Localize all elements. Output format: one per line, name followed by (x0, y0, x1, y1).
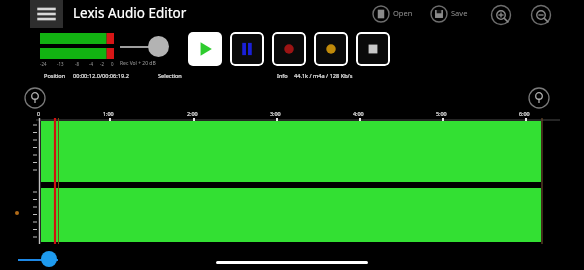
staticText: 00:00:12.0/00:06:19.2 (73, 72, 129, 80)
staticText: 3:00 (270, 110, 281, 117)
button[interactable]: Record (272, 32, 306, 66)
button[interactable]: Menu (30, 0, 63, 28)
button[interactable]: Save (430, 2, 484, 26)
staticText: -4 (89, 61, 93, 67)
button[interactable]: Horizontal scroll (216, 261, 368, 264)
staticText: Open (393, 8, 413, 18)
staticText: Info (277, 72, 288, 80)
button[interactable]: Record pause (314, 32, 348, 66)
button[interactable]: Zoom level (41, 251, 57, 267)
button[interactable]: Add marker right (528, 87, 550, 109)
staticText: 44.1k / m4a / 128 Kb/s (294, 72, 353, 80)
button[interactable]: Pause (230, 32, 264, 66)
staticText: Selection (158, 72, 182, 80)
button[interactable]: Zoom out (530, 4, 552, 26)
staticText: 6:00 (519, 110, 530, 117)
button[interactable]: Add marker left (24, 87, 46, 109)
staticText: -24 (40, 61, 47, 67)
button[interactable]: Recording volume (148, 36, 169, 57)
staticText: 4:00 (353, 110, 364, 117)
staticText: Position (44, 72, 66, 80)
staticText: Save (451, 8, 468, 18)
button[interactable]: Play (188, 32, 222, 66)
button[interactable]: Open (372, 2, 426, 26)
staticText: Rec Vol + 20 dB (120, 60, 156, 67)
staticText: -8 (75, 61, 79, 67)
button[interactable]: Stop (356, 32, 390, 66)
staticText: 1:00 (103, 110, 114, 117)
staticText: 0 (37, 110, 41, 117)
staticText: 5:00 (436, 110, 447, 117)
staticText: 0 (111, 61, 114, 67)
staticText: -2 (100, 61, 104, 67)
staticText: -13 (57, 61, 64, 67)
staticText: Lexis Audio Editor (73, 4, 187, 22)
button[interactable]: Zoom in (490, 4, 512, 26)
staticText: 2:00 (187, 110, 198, 117)
